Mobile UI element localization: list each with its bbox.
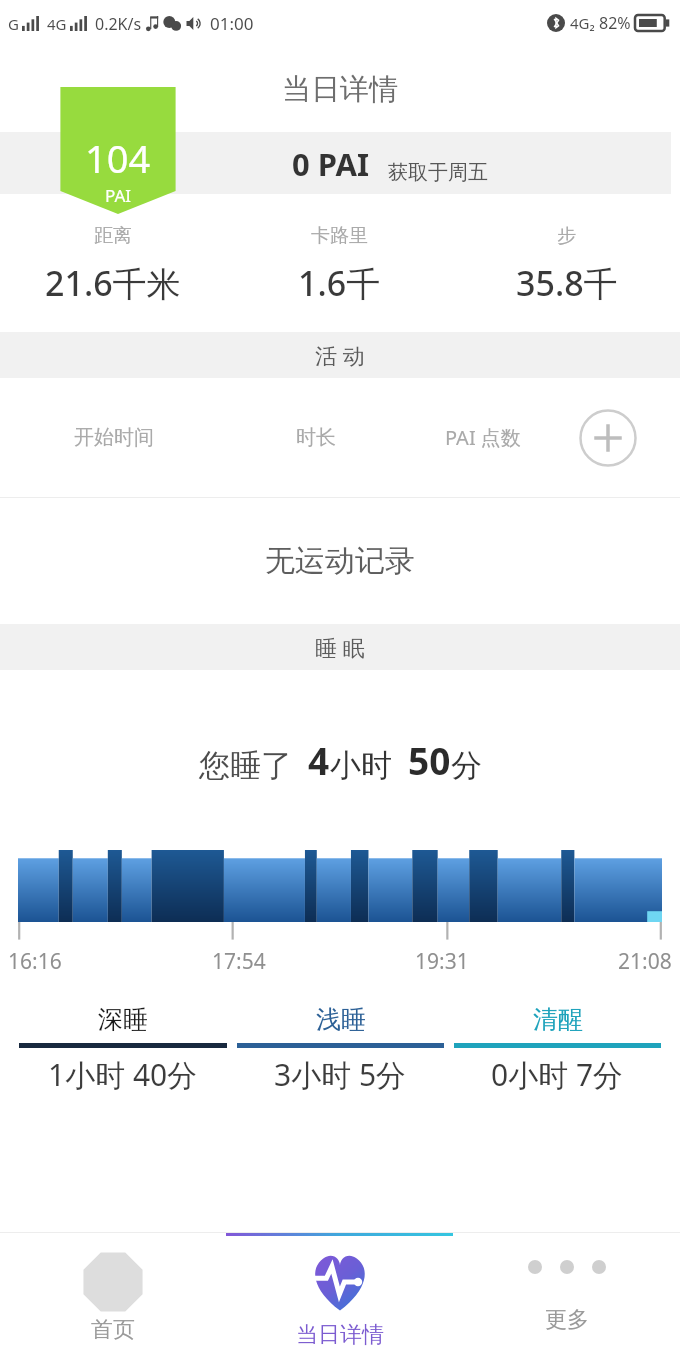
button[interactable]: Add activity (579, 409, 637, 467)
staticText: 1.6千 (298, 260, 381, 306)
staticText: PAI 点数 (445, 424, 521, 451)
staticText: 卡路里 (311, 224, 368, 248)
button[interactable]: 首页 (0, 1233, 226, 1360)
staticText: 0 PAI (292, 143, 370, 185)
staticText: 首页 (91, 1316, 135, 1344)
staticText: 21:08 (618, 947, 672, 976)
staticText: 更多 (545, 1306, 589, 1334)
staticText: 获取于周五 (388, 160, 488, 185)
button[interactable]: 深睡 (14, 1004, 232, 1095)
staticText: 0.2K/s (95, 13, 142, 35)
button[interactable]: 浅睡 (232, 1004, 449, 1095)
staticText: 当日详情 (296, 1321, 384, 1349)
staticText: 深睡 (98, 1004, 148, 1035)
staticText: 当日详情 (282, 71, 398, 108)
staticText: 4 (308, 735, 330, 785)
staticText: 16:16 (8, 947, 62, 976)
staticText: 开始时间 (74, 425, 154, 450)
staticText: 01:00 (210, 12, 254, 35)
staticText: 1小时 40分 (48, 1054, 198, 1095)
staticText: 无运动记录 (265, 542, 415, 580)
staticText: 时长 (296, 425, 336, 450)
staticText: 17:54 (212, 947, 266, 976)
button[interactable]: More (453, 1233, 680, 1360)
staticText: 50 (408, 735, 451, 785)
button[interactable]: 清醒 (449, 1004, 666, 1095)
staticText: 104 (85, 132, 151, 184)
staticText: 3小时 5分 (274, 1054, 407, 1095)
staticText: G (8, 14, 19, 34)
staticText: 距离 (94, 224, 132, 248)
staticText: 睡 眠 (315, 632, 365, 662)
staticText: 35.8千 (516, 260, 618, 306)
staticText: 活 动 (315, 340, 365, 370)
staticText: 21.6千米 (45, 260, 181, 306)
staticText: 清醒 (533, 1004, 583, 1035)
staticText: 步 (557, 224, 576, 248)
button[interactable]: 当日详情 (226, 1233, 453, 1360)
staticText: 0小时 7分 (491, 1054, 624, 1095)
staticText: PAI (105, 184, 132, 207)
staticText: 19:31 (415, 947, 469, 976)
staticText: 分 (451, 746, 482, 785)
staticText: 小时 (330, 746, 392, 785)
staticText: 82% (599, 12, 631, 34)
staticText: 浅睡 (316, 1004, 366, 1035)
staticText: 您睡了 (199, 746, 292, 785)
staticText: 4G (47, 14, 67, 34)
staticText: 4G₂ (570, 13, 595, 33)
